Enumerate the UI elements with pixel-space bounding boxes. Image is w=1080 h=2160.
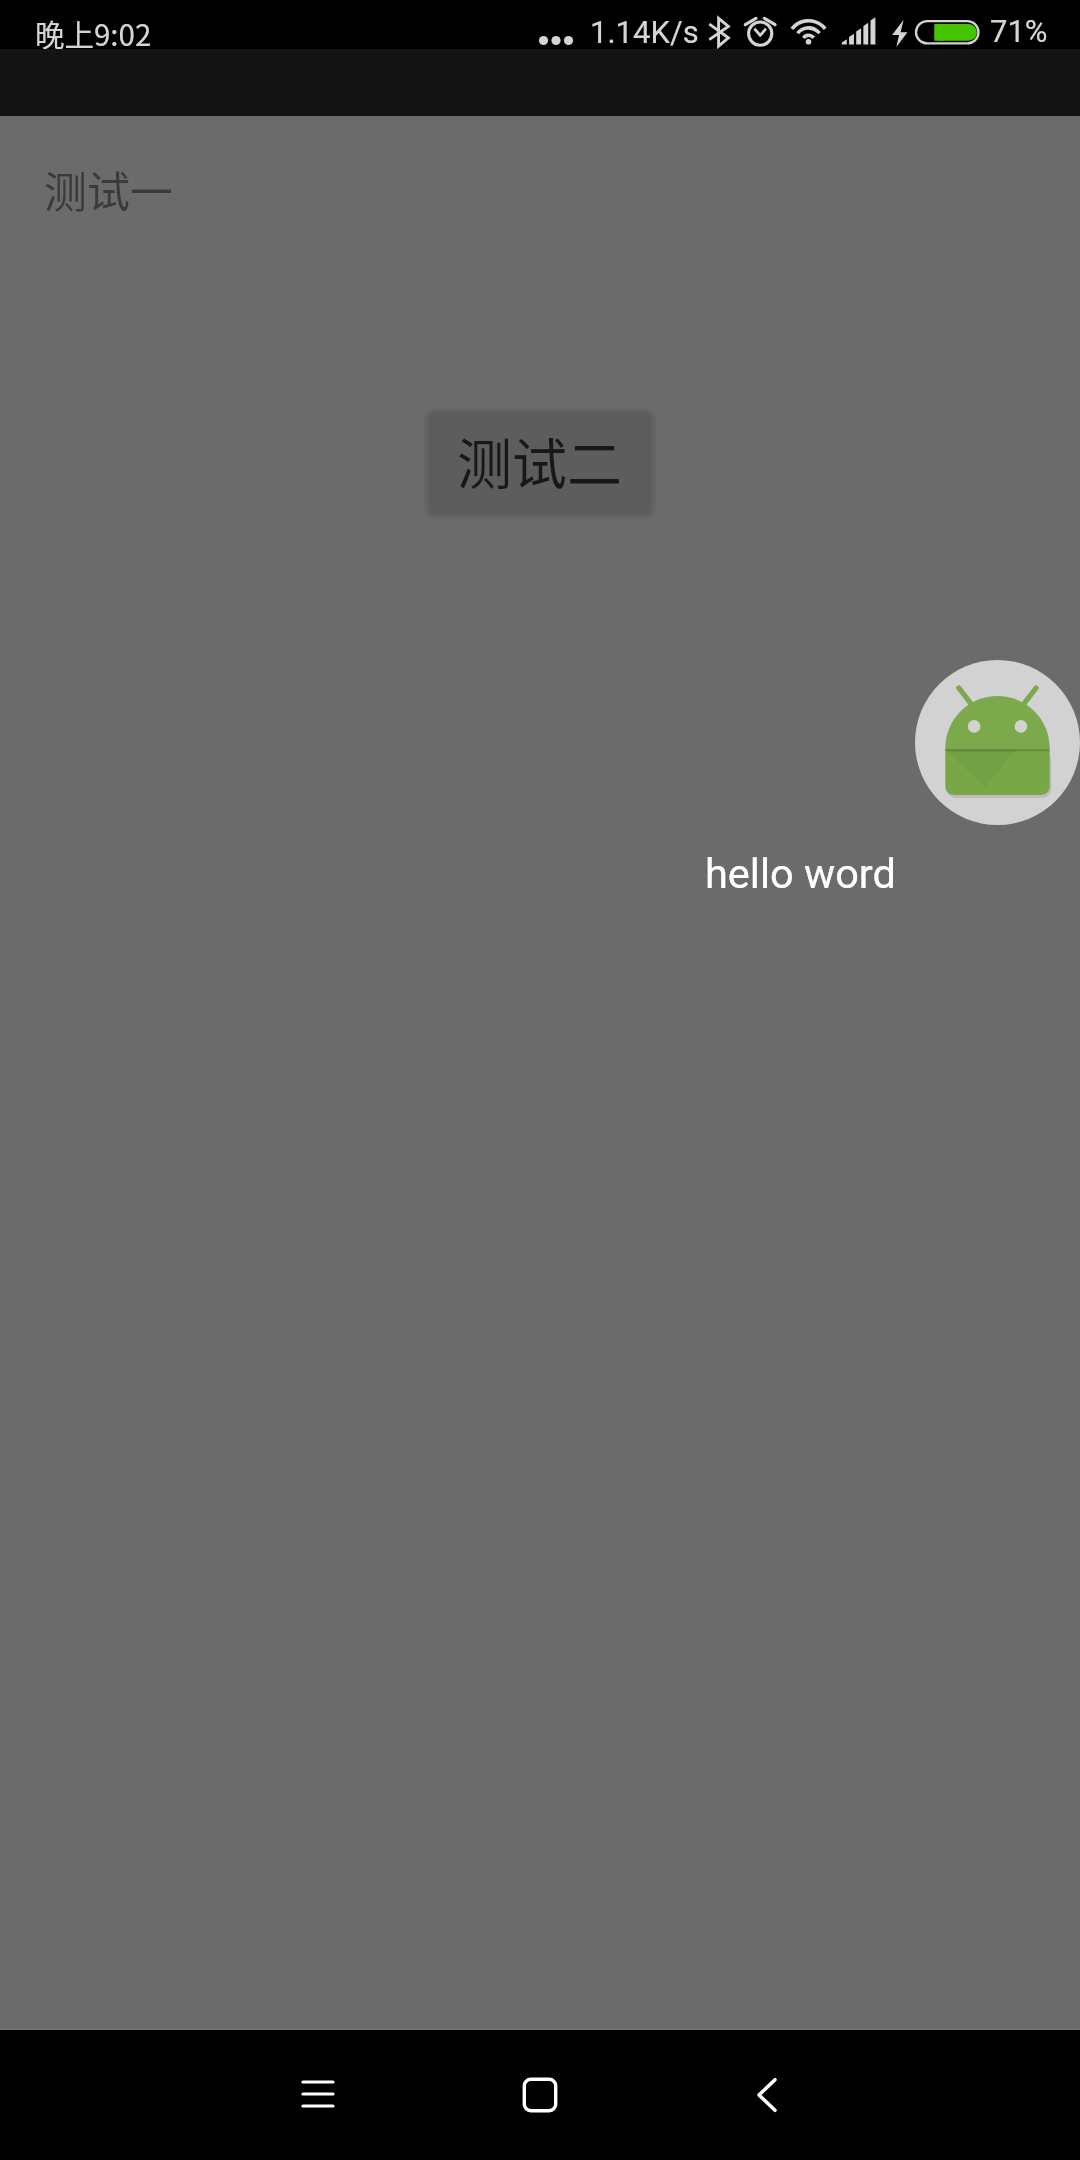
button[interactable]: Recent apps [258, 2034, 378, 2154]
staticText: 71% [990, 13, 1048, 49]
button[interactable]: 测试二 [430, 411, 650, 512]
staticText: 测试二 [457, 420, 623, 500]
other: Android app icon [915, 660, 1080, 825]
button[interactable]: Back [707, 2035, 827, 2155]
staticText: 测试一 [44, 158, 173, 220]
staticText: 晚上9:02 [35, 12, 152, 55]
staticText: hello word [705, 849, 896, 898]
button[interactable]: Home [480, 2035, 600, 2155]
staticText: 1.14K/s [590, 14, 699, 50]
